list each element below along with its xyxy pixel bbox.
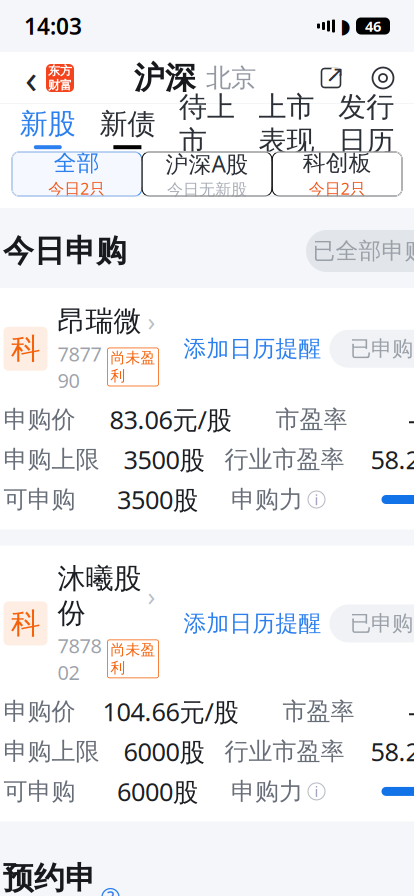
button[interactable]: 北京 <box>206 62 256 93</box>
staticText: 沪深 <box>134 59 196 97</box>
staticText: 今日2只 <box>309 178 366 199</box>
button[interactable]: 科 <box>3 561 175 685</box>
button[interactable]: 添加日历提醒 <box>183 609 321 637</box>
staticText: 沐曦股份 <box>57 561 141 630</box>
staticText: 14:03 <box>24 11 82 41</box>
staticText: 财富 <box>48 78 72 93</box>
staticText: 申购价 <box>3 697 75 726</box>
staticText: 科创板 <box>303 149 372 177</box>
staticText: –– <box>407 695 414 728</box>
staticText: 3500股 <box>123 443 204 476</box>
staticText: 已申购 <box>350 336 413 362</box>
staticText: 申购力 <box>231 777 303 806</box>
staticText: 3500股 <box>117 483 198 516</box>
staticText: 今日无新股 <box>167 180 247 199</box>
staticText: 待上市 <box>179 90 235 158</box>
staticText: 行业市盈率 <box>224 737 344 766</box>
staticText: 787790 <box>57 340 101 393</box>
staticText: 添加日历提醒 <box>183 335 321 363</box>
staticText: 今日申购 <box>3 232 127 270</box>
staticText: 市盈率 <box>282 697 354 726</box>
button[interactable]: 新债 <box>88 104 167 152</box>
button[interactable]: 待上市 <box>167 104 247 152</box>
staticText: 83.06元/股 <box>109 403 231 436</box>
staticText: 科 <box>11 605 40 641</box>
staticText: 已全部申购 <box>312 237 414 265</box>
button[interactable]: 分享 <box>316 63 346 93</box>
staticText: 58.25 <box>370 735 414 768</box>
staticText: 申购上限 <box>3 737 99 766</box>
staticText: › <box>147 304 155 338</box>
button[interactable]: 返回 <box>16 56 46 100</box>
staticText: 已申购 <box>350 610 413 637</box>
staticText: 添加日历提醒 <box>183 609 321 637</box>
staticText: 尚未盈利 <box>110 641 155 677</box>
staticText: 申购力 <box>231 485 303 514</box>
staticText: 6000股 <box>123 735 204 768</box>
staticText: 787802 <box>57 632 101 685</box>
staticText: 新股 <box>20 107 76 141</box>
button[interactable]: 添加日历提醒 <box>183 335 321 363</box>
staticText: 全部 <box>54 149 100 177</box>
staticText: ↗ <box>325 61 344 87</box>
button[interactable]: 全部 <box>12 152 142 196</box>
staticText: 上市表现 <box>259 90 315 158</box>
staticText: ? <box>107 886 114 896</box>
button[interactable]: 设置 <box>368 63 398 93</box>
button[interactable]: 已全部申购 <box>306 230 414 272</box>
staticText: ↗ <box>325 61 344 87</box>
staticText: 6000股 <box>117 775 198 808</box>
button[interactable]: 新股 <box>8 104 88 152</box>
staticText: i <box>314 782 318 801</box>
button[interactable]: 科创板 <box>272 152 402 196</box>
staticText: 今日2只 <box>48 178 105 199</box>
staticText: › <box>147 579 155 613</box>
staticText: 申购上限 <box>3 445 99 474</box>
staticText: 104.66元/股 <box>102 695 238 728</box>
button[interactable]: 科 <box>3 304 175 393</box>
staticText: 市盈率 <box>275 405 347 434</box>
staticText: 昂瑞微 <box>57 304 141 338</box>
button[interactable]: 上市表现 <box>247 104 326 152</box>
staticText: 北京 <box>206 62 256 93</box>
staticText: 预约申购 <box>3 859 96 896</box>
button[interactable]: 已申购 <box>329 330 414 368</box>
staticText: 可申购 <box>3 777 75 806</box>
staticText: 尚未盈利 <box>110 349 155 385</box>
staticText: ◗ <box>340 15 351 37</box>
staticText: 可申购 <box>3 485 75 514</box>
button[interactable]: 东方财富 <box>46 64 74 92</box>
staticText: –– <box>407 403 414 436</box>
staticText: i <box>314 490 318 509</box>
staticText: ‹ <box>25 51 37 104</box>
button[interactable]: 发行日历 <box>326 104 406 152</box>
staticText: 46 <box>365 16 381 36</box>
staticText: 58.25 <box>370 443 414 476</box>
staticText: 科 <box>11 331 40 367</box>
button[interactable]: 已申购 <box>329 604 414 642</box>
staticText: 沪深A股 <box>165 149 248 179</box>
staticText: 行业市盈率 <box>224 445 344 474</box>
staticText: 申购价 <box>3 405 75 434</box>
staticText: 东方 <box>48 63 72 78</box>
staticText: 新债 <box>99 107 155 141</box>
staticText: 发行日历 <box>338 90 394 158</box>
button[interactable]: 沪深A股 <box>142 152 272 196</box>
